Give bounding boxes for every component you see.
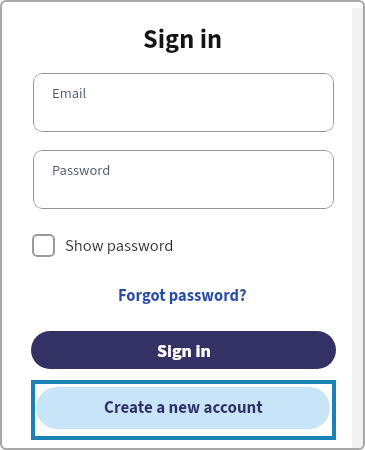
staticText: Password [52, 160, 111, 181]
staticText: Create a new account [104, 396, 263, 420]
staticText: Sign in [143, 21, 223, 59]
button[interactable]: Sign in [31, 331, 336, 369]
staticText: Email [52, 83, 87, 104]
staticText: Sign in [157, 339, 211, 365]
button[interactable]: Show password [32, 233, 174, 258]
button[interactable]: Create a new account [36, 387, 330, 429]
button[interactable]: Password [33, 150, 334, 209]
staticText: Show password [65, 234, 174, 257]
button[interactable]: Email [33, 73, 334, 132]
button[interactable]: Forgot password? [118, 284, 247, 307]
